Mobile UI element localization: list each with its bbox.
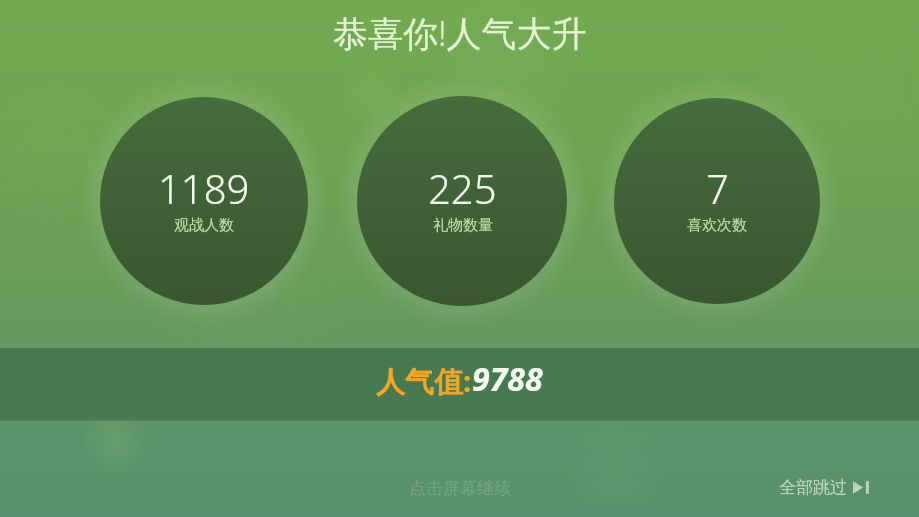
button[interactable]: 225 <box>357 96 567 306</box>
button[interactable]: 1189 <box>100 97 308 305</box>
staticText: 喜欢次数 <box>687 216 747 235</box>
button[interactable]: 7 <box>614 98 820 304</box>
button[interactable]: 点击屏幕继续 <box>0 478 919 499</box>
staticText: 礼物数量 <box>433 216 493 235</box>
staticText: 1189 <box>158 161 250 215</box>
staticText: 观战人数 <box>174 216 234 235</box>
staticText: 全部跳过 <box>779 477 847 498</box>
other: Skip all <box>853 480 870 495</box>
staticText: 7 <box>706 161 729 215</box>
button[interactable]: 全部跳过 <box>777 475 872 500</box>
staticText: 225 <box>428 161 497 215</box>
staticText: 恭喜你!人气大升 <box>333 9 587 57</box>
staticText: 点击屏幕继续 <box>409 478 511 499</box>
staticText: 9788 <box>472 357 543 401</box>
staticText: 人气值: <box>376 361 472 401</box>
